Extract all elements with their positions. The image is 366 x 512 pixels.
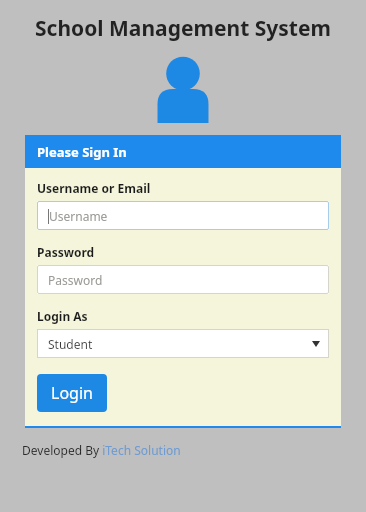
staticText: Student	[48, 336, 93, 352]
staticText: Password	[48, 272, 103, 288]
staticText: Password	[37, 244, 95, 260]
button[interactable]: Password	[37, 265, 329, 294]
button[interactable]: Developed By iTech Solution	[22, 442, 181, 458]
button[interactable]: Student	[37, 329, 329, 358]
staticText: Please Sign In	[37, 143, 127, 161]
staticText: School Management System	[0, 14, 366, 43]
button[interactable]: Username	[37, 201, 329, 230]
button[interactable]: Login	[37, 374, 107, 412]
staticText: Login As	[37, 308, 88, 324]
staticText: Username	[49, 208, 108, 224]
staticText: Login	[51, 382, 93, 404]
staticText: Username or Email	[37, 180, 151, 196]
